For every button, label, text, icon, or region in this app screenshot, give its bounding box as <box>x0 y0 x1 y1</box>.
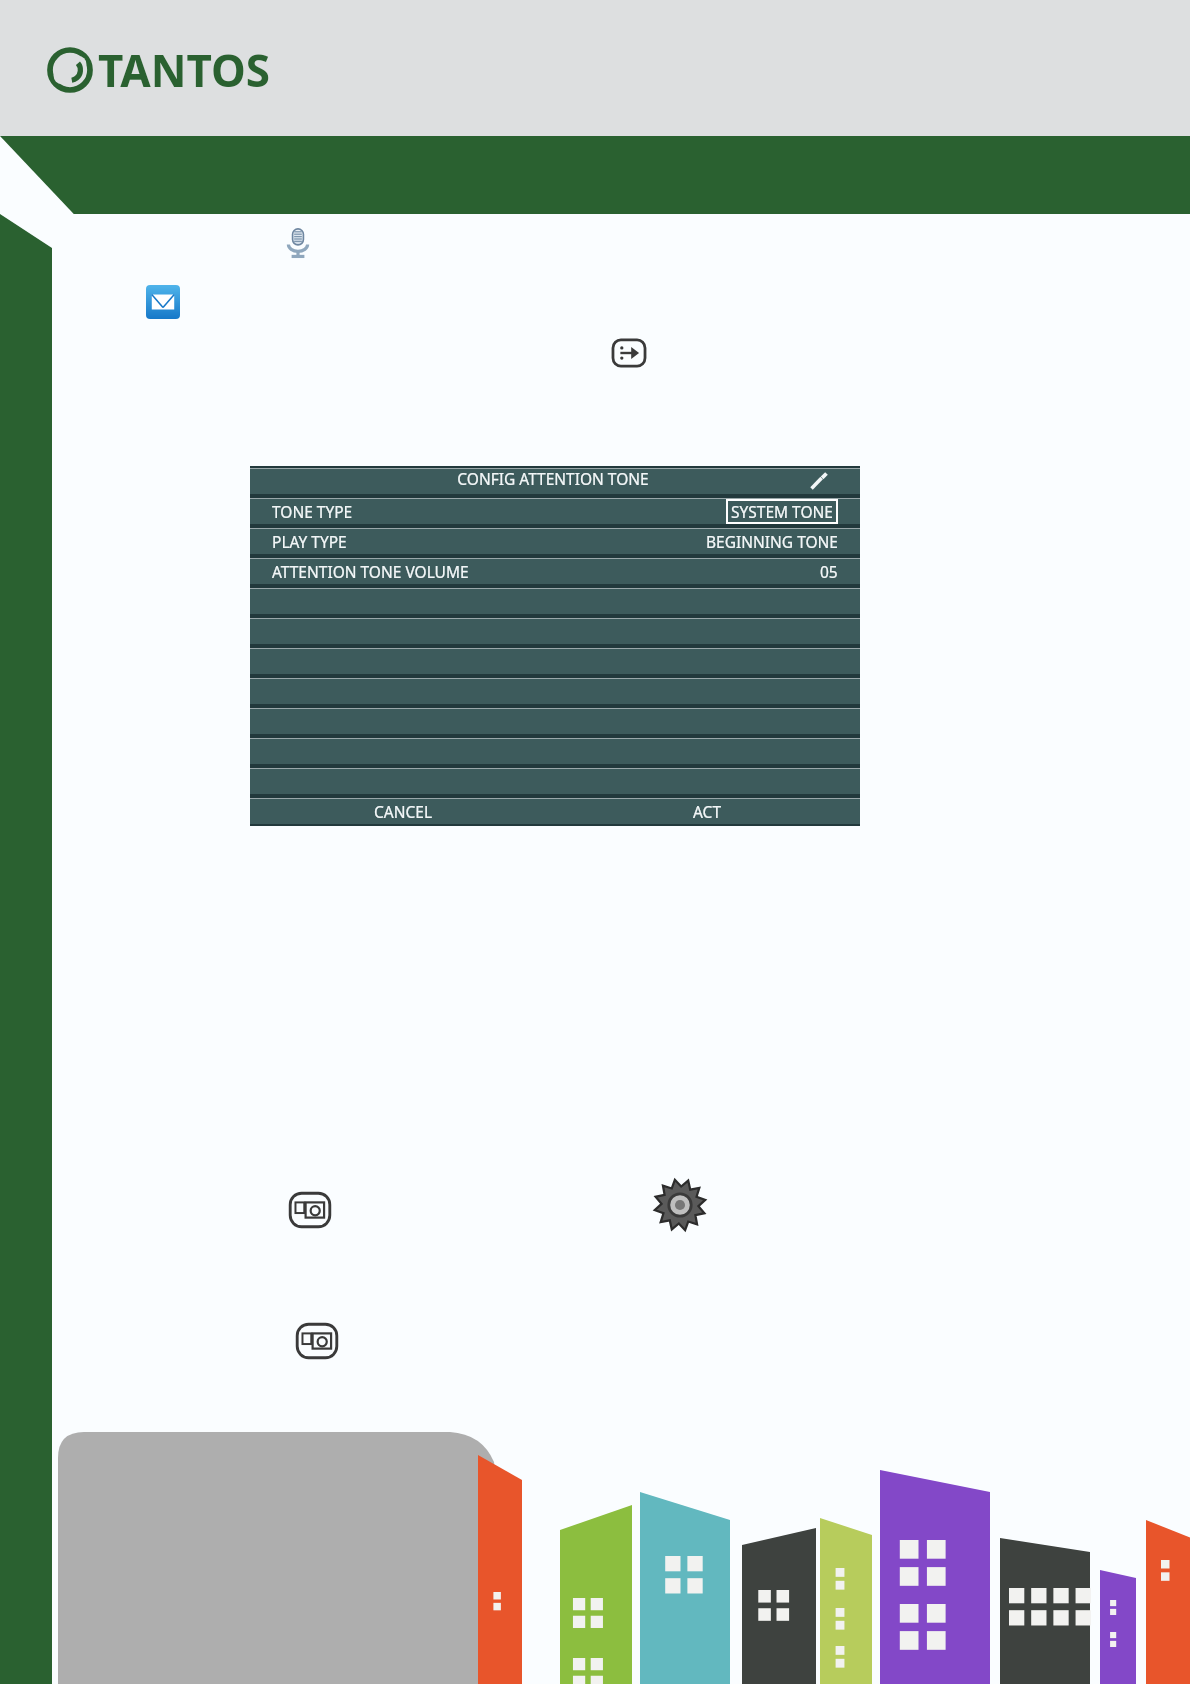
staticText: CONFIG ATTENTION TONE <box>272 468 834 489</box>
button[interactable]: Camera key <box>288 1191 332 1229</box>
staticText: ATTENTION TONE VOLUME <box>272 561 469 582</box>
button[interactable]: Microphone <box>282 227 314 259</box>
button[interactable]: Message <box>146 285 180 319</box>
staticText: PLAY TYPE <box>272 531 347 552</box>
staticText: BEGINNING TONE <box>706 531 838 552</box>
button[interactable]: Settings <box>652 1177 708 1233</box>
button[interactable]: Camera key <box>295 1322 339 1360</box>
staticText: TONE TYPE <box>272 501 353 522</box>
staticText: CANCEL <box>374 801 433 822</box>
staticText: 05 <box>820 561 838 582</box>
staticText: TANTOS <box>98 40 271 100</box>
button[interactable]: Enter <box>611 338 647 368</box>
staticText: ACT <box>693 801 722 822</box>
staticText: SYSTEM TONE <box>731 501 833 522</box>
